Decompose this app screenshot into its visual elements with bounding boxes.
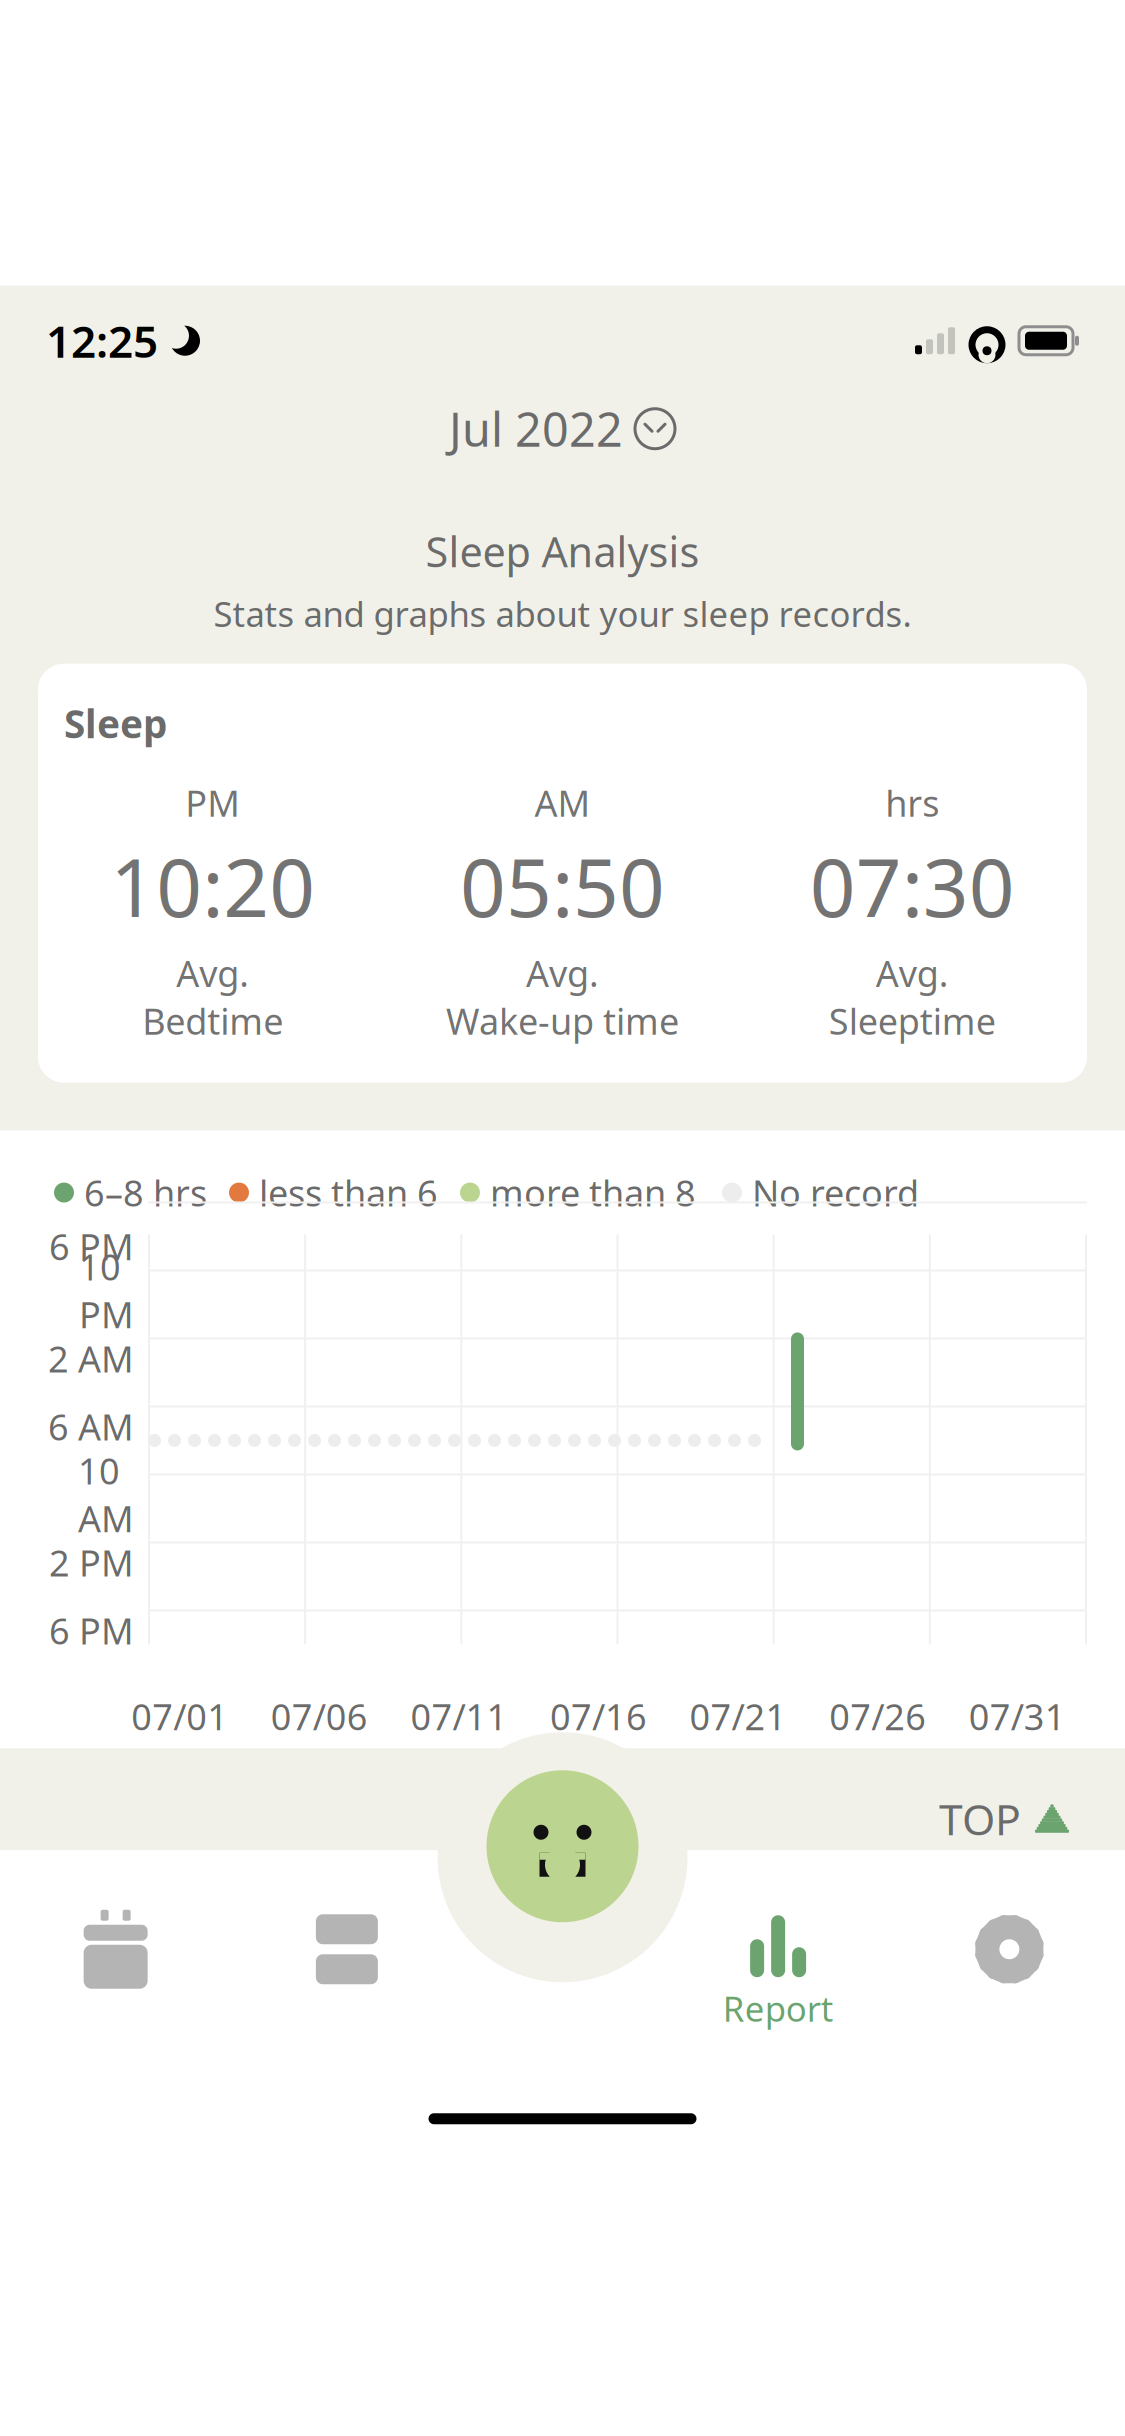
staticText: Sleeptime: [829, 997, 996, 1045]
staticText: AM: [534, 779, 590, 827]
staticText: 12:25: [46, 311, 158, 370]
staticText: 10 PM: [79, 1243, 134, 1338]
staticText: Stats and graphs about your sleep record…: [213, 591, 911, 637]
staticText: 07/11: [410, 1692, 507, 1740]
staticText: Jul 2022: [449, 398, 623, 460]
button[interactable]: TOP: [927, 1782, 1081, 1855]
staticText: 07/31: [969, 1692, 1066, 1740]
button[interactable]: Records: [0, 1896, 231, 2046]
button[interactable]: Jul 2022: [439, 392, 686, 466]
staticText: Report: [723, 1985, 834, 2031]
staticText: less than 6: [259, 1169, 438, 1216]
staticText: 2 PM: [49, 1538, 134, 1586]
button[interactable]: Report: [662, 1896, 894, 2046]
staticText: Bedtime: [142, 997, 283, 1045]
button[interactable]: List: [231, 1896, 462, 2046]
staticText: PM: [185, 779, 240, 827]
staticText: 6–8 hrs: [84, 1169, 207, 1216]
staticText: 6 PM: [49, 1606, 134, 1654]
staticText: Avg.: [176, 949, 249, 997]
staticText: Wake-up time: [446, 997, 679, 1045]
staticText: 07/26: [829, 1692, 926, 1740]
staticText: 6 PM: [49, 1222, 134, 1270]
staticText: 07/21: [690, 1692, 787, 1740]
staticText: 10 AM: [78, 1447, 134, 1542]
staticText: TOP: [939, 1790, 1021, 1847]
staticText: Sleep Analysis: [425, 524, 699, 579]
staticText: 2 AM: [48, 1334, 134, 1382]
staticText: more than 8: [490, 1169, 696, 1216]
staticText: 07/01: [131, 1692, 228, 1740]
staticText: 10:20: [110, 833, 315, 939]
staticText: Sleep: [64, 698, 167, 749]
staticText: 07/06: [271, 1692, 368, 1740]
button[interactable]: Settings: [894, 1896, 1125, 2046]
staticText: 05:50: [460, 833, 665, 939]
staticText: hrs: [885, 779, 939, 827]
staticText: 6 AM: [48, 1402, 134, 1450]
staticText: 07:30: [810, 833, 1015, 939]
staticText: No record: [752, 1169, 919, 1216]
staticText: Avg.: [876, 949, 949, 997]
staticText: Avg.: [526, 949, 599, 997]
staticText: 07/16: [550, 1692, 647, 1740]
button[interactable]: Add record: [486, 1770, 638, 1922]
